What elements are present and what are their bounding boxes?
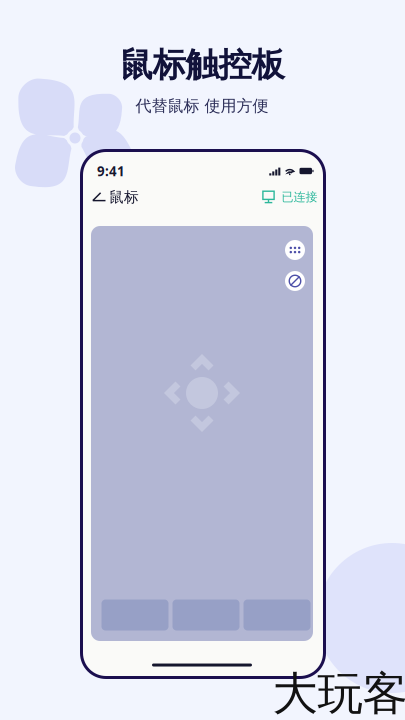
staticText: 9:41 [97, 162, 125, 180]
button[interactable]: Back [85, 184, 113, 210]
button[interactable]: Disable touchpad [285, 271, 305, 291]
staticText: 鼠标 [109, 188, 139, 206]
staticText: 大玩客 [272, 666, 405, 720]
button[interactable]: 鼠标 [109, 188, 139, 206]
button[interactable]: 已连接 [257, 187, 320, 207]
staticText: 鼠标触控板 [119, 44, 284, 85]
staticText: 已连接 [281, 190, 317, 204]
button[interactable]: Keyboard [285, 240, 305, 260]
staticText: 代替鼠标 使用方便 [135, 96, 268, 116]
